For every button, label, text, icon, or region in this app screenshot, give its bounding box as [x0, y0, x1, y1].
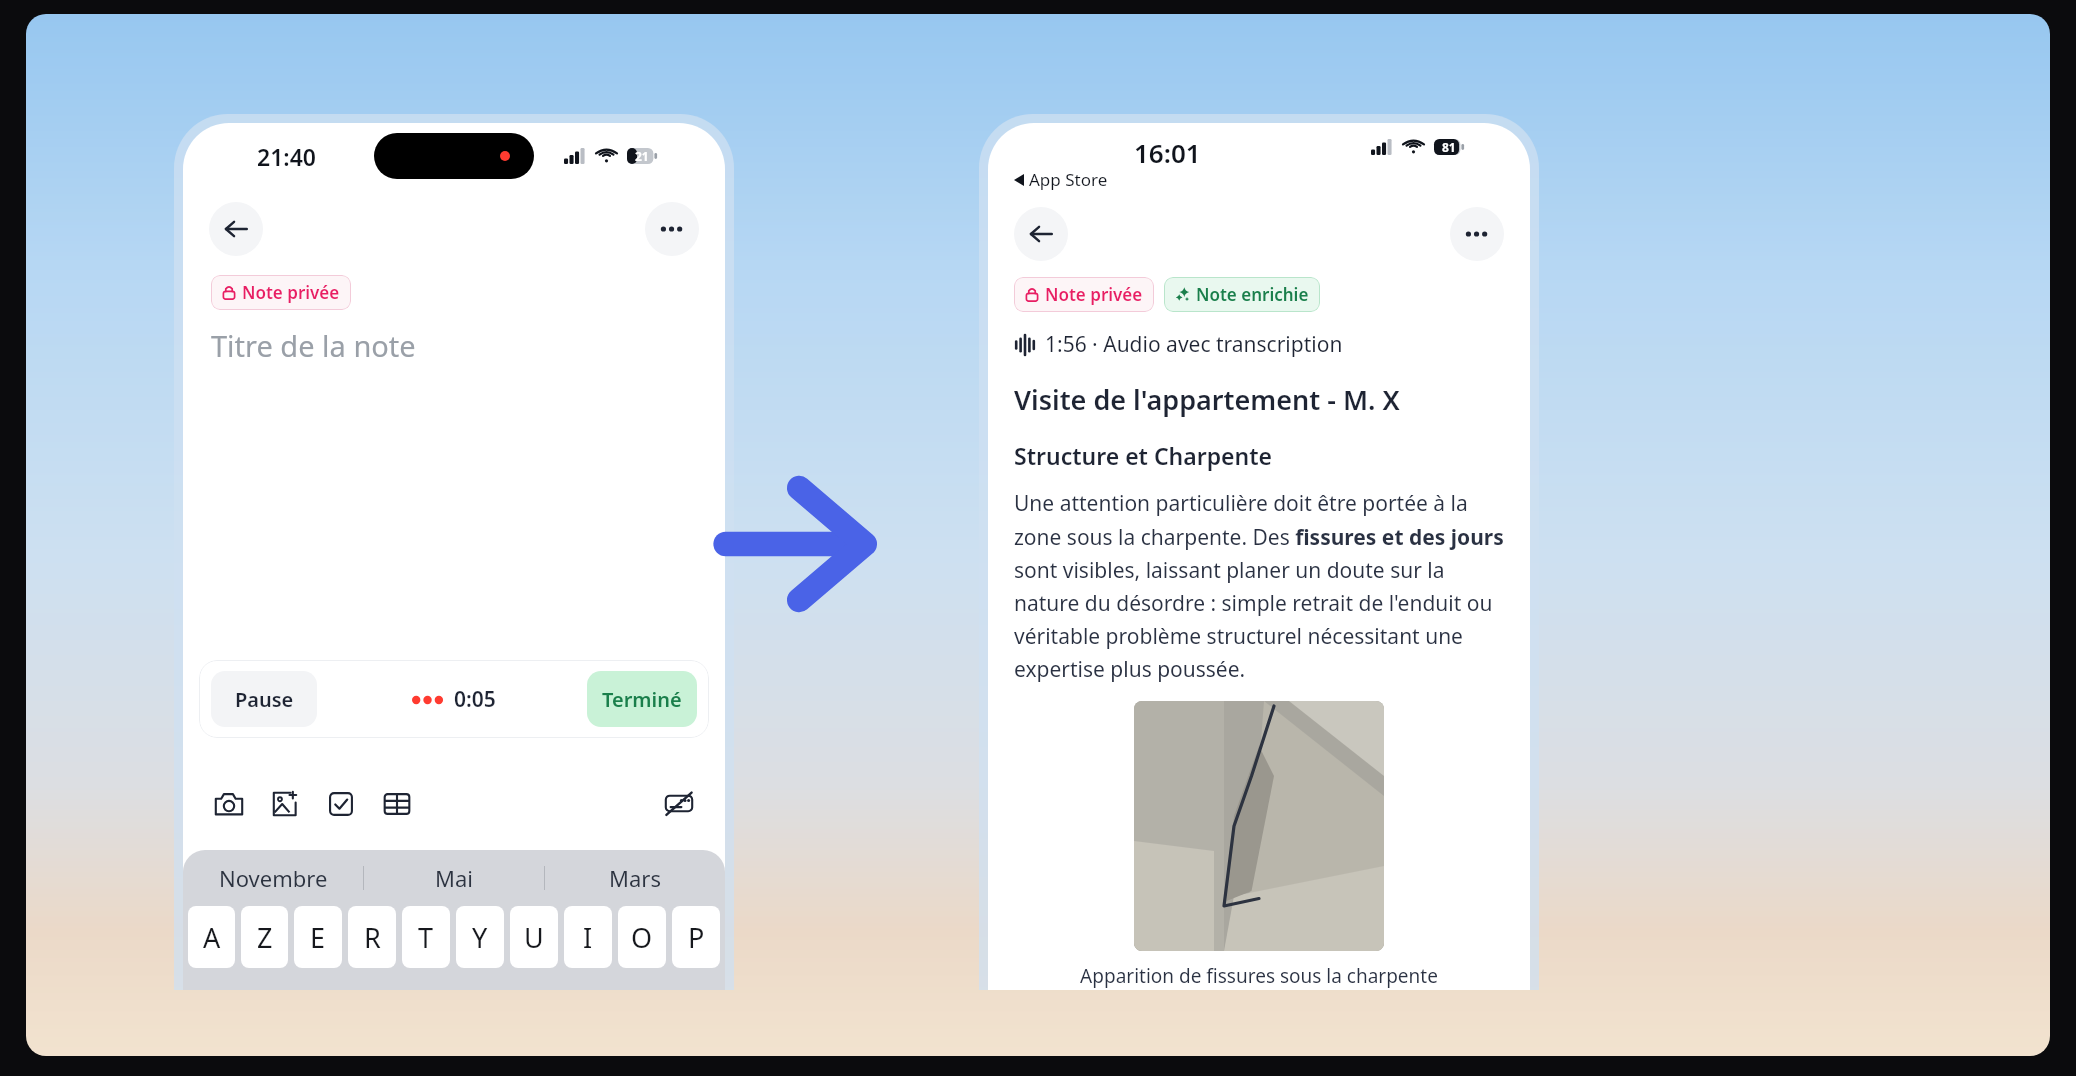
staticText: Novembre — [219, 863, 328, 893]
button[interactable]: Terminé — [587, 671, 697, 727]
staticText: 21:40 — [257, 141, 316, 172]
button[interactable]: Note privée — [1014, 277, 1154, 312]
staticText: 1:56 · Audio avec transcription — [1045, 330, 1343, 359]
button[interactable]: Z — [241, 906, 288, 968]
staticText: Terminé — [602, 686, 682, 713]
button[interactable]: U — [510, 906, 558, 968]
staticText: Mars — [609, 863, 661, 893]
button[interactable]: T — [402, 906, 450, 968]
button[interactable]: More options — [1450, 207, 1504, 261]
button[interactable]: Note privée — [211, 275, 351, 310]
button[interactable]: Checklist — [321, 784, 361, 824]
button[interactable]: Y — [456, 906, 504, 968]
staticText: 21 — [635, 148, 649, 164]
button[interactable]: Back — [1014, 207, 1068, 261]
staticText: 81 — [1442, 139, 1456, 155]
staticText: R — [364, 919, 381, 956]
button[interactable]: A — [188, 906, 235, 968]
staticText: Structure et Charpente — [1014, 440, 1273, 471]
staticText: O — [631, 919, 653, 956]
staticText: Visite de l'appartement - M. X — [1014, 381, 1400, 418]
button[interactable]: E — [294, 906, 342, 968]
staticText: Note enrichie — [1196, 283, 1309, 306]
staticText: E — [310, 919, 326, 956]
staticText: Apparition de fissures sous la charpente… — [1080, 963, 1438, 990]
staticText: 0:05 — [454, 685, 496, 714]
button[interactable]: Table — [377, 784, 417, 824]
staticText: T — [418, 919, 434, 956]
staticText: I — [583, 919, 593, 956]
staticText: Pause — [235, 686, 294, 713]
button[interactable]: More options — [645, 202, 699, 256]
staticText: U — [524, 919, 544, 956]
button[interactable]: Pause — [211, 671, 317, 727]
button[interactable]: Novembre — [183, 850, 363, 906]
staticText: Y — [472, 919, 488, 956]
button[interactable]: Camera — [209, 784, 249, 824]
button[interactable]: R — [348, 906, 396, 968]
staticText: App Store — [1029, 168, 1108, 191]
staticText: Mai — [435, 863, 473, 893]
button[interactable]: Add image — [265, 784, 305, 824]
staticText: 16:01 — [1134, 135, 1201, 170]
staticText: Une attention particulière doit être por… — [1014, 489, 1504, 683]
button[interactable]: Mai — [364, 850, 544, 906]
staticText: P — [688, 919, 705, 956]
button[interactable]: O — [618, 906, 666, 968]
button[interactable]: I — [564, 906, 612, 968]
staticText: Note privée — [242, 281, 340, 304]
staticText: A — [203, 919, 221, 956]
button[interactable]: Back — [209, 202, 263, 256]
staticText: Note privée — [1045, 283, 1143, 306]
button[interactable]: Mars — [545, 850, 725, 906]
staticText: Z — [257, 919, 273, 956]
button[interactable]: P — [672, 906, 720, 968]
staticText: Titre de la note — [211, 326, 416, 365]
button[interactable]: Hide keyboard — [659, 784, 699, 824]
button[interactable]: Note enrichie — [1164, 277, 1320, 312]
